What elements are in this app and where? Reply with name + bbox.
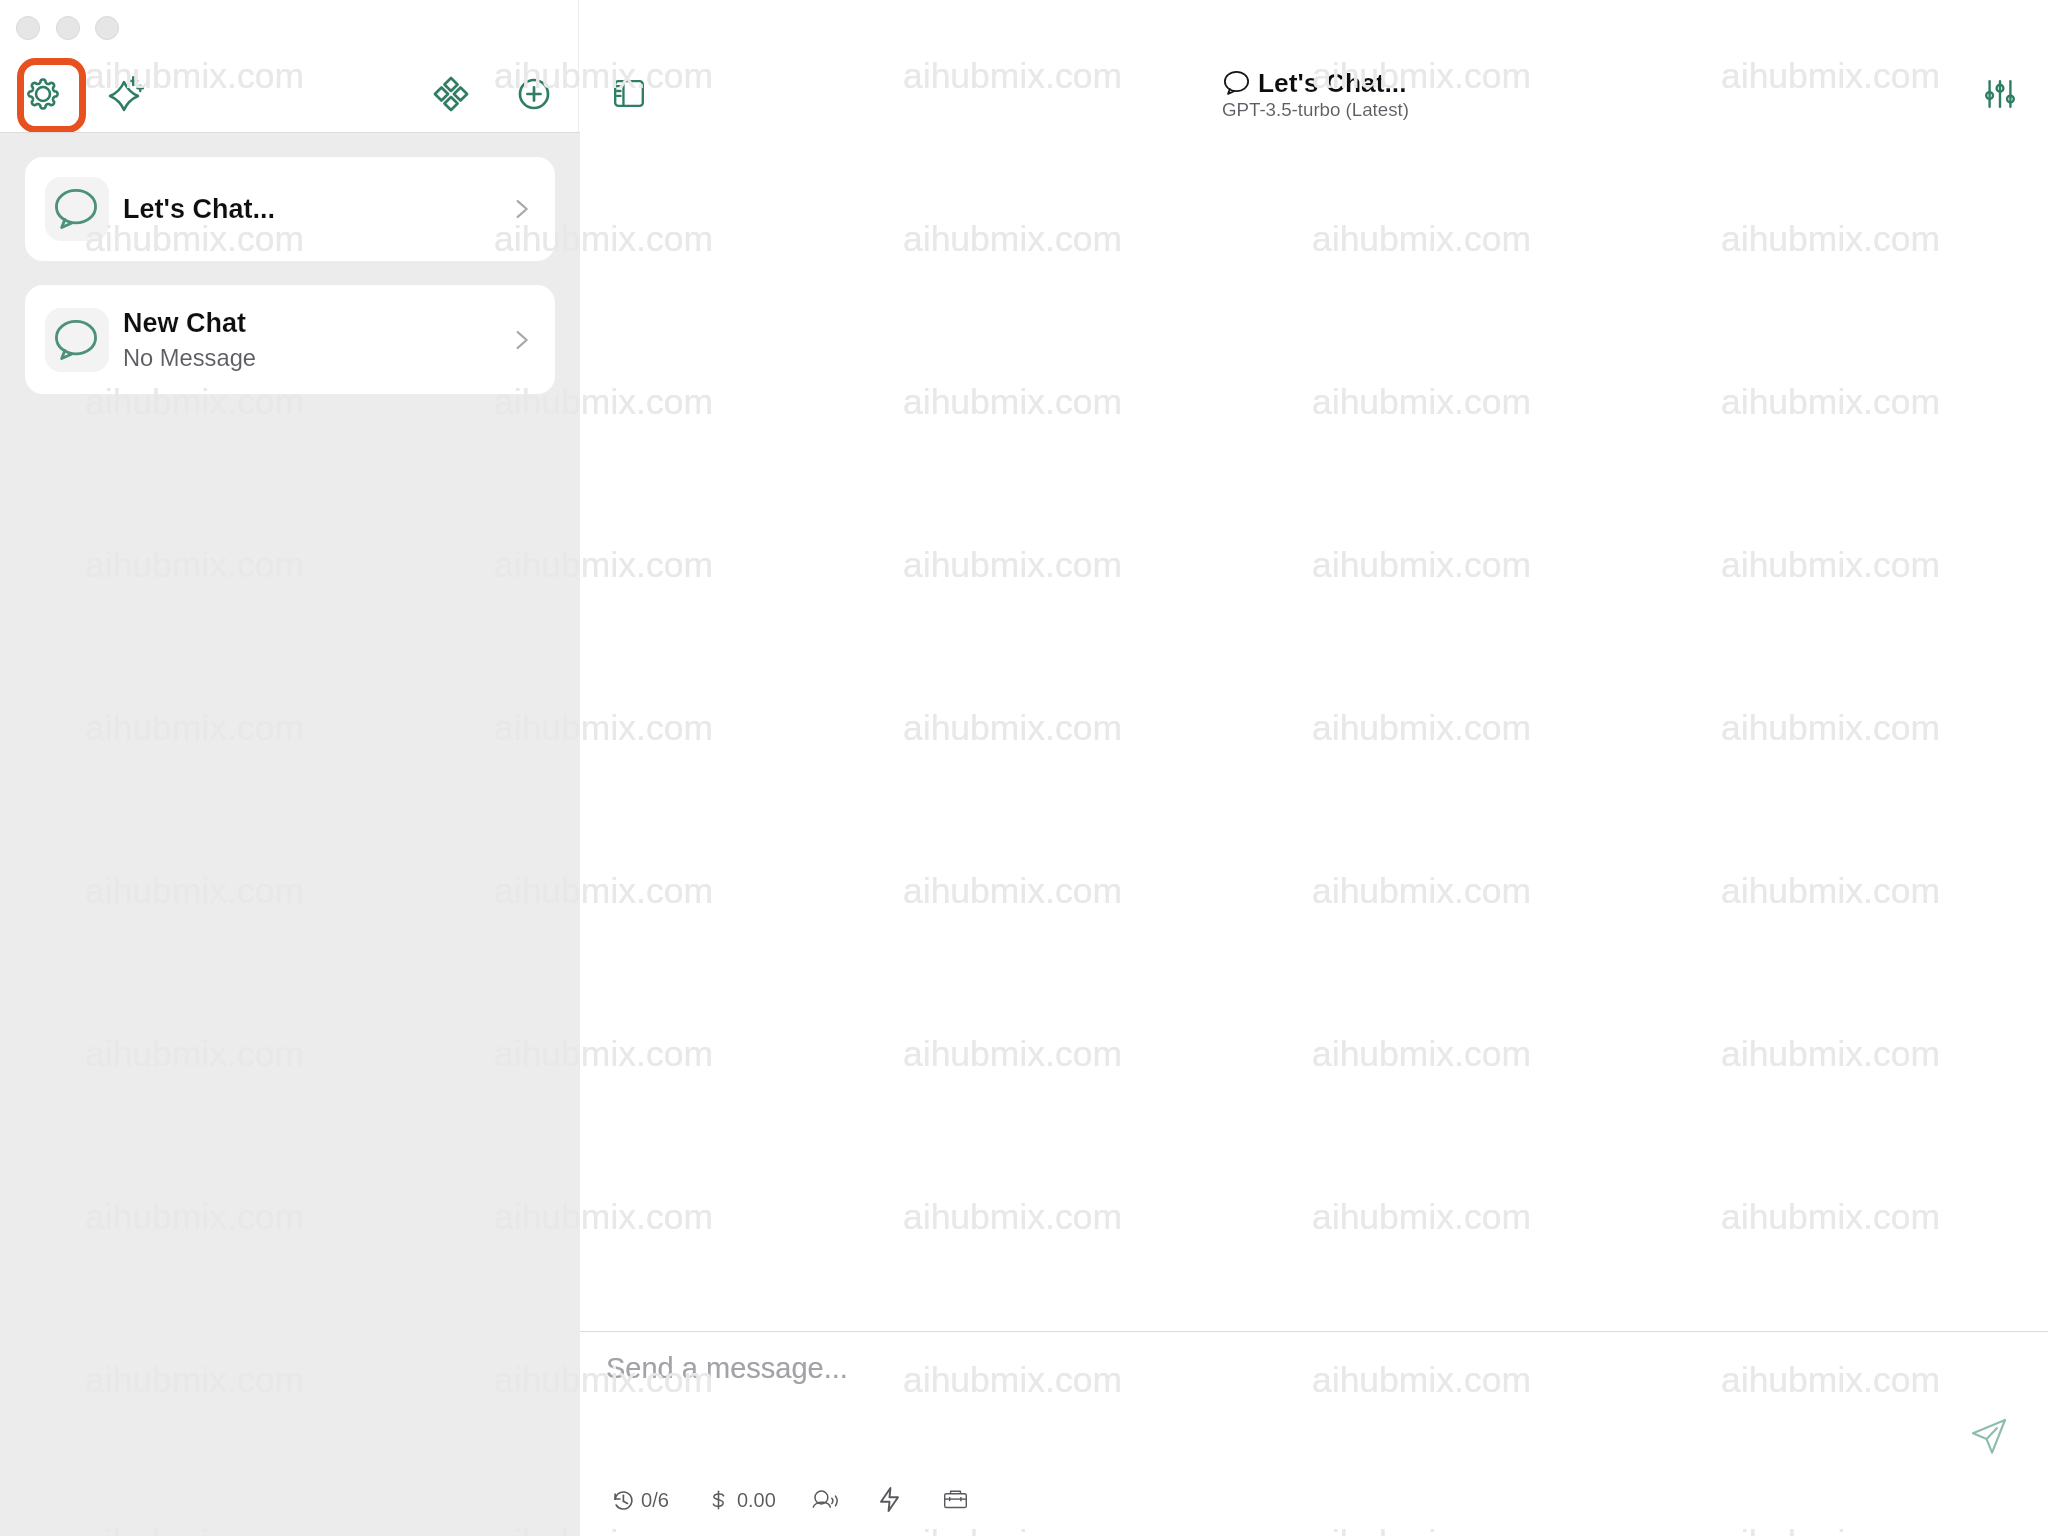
staticText: aihubmix.com (903, 1360, 1122, 1400)
staticText: 0/6 (641, 1489, 669, 1511)
button[interactable]: 0/6 (604, 1480, 677, 1520)
staticText: No Message (123, 345, 256, 371)
staticText: aihubmix.com (1721, 1034, 1940, 1074)
button[interactable]: Apps (425, 68, 477, 120)
staticText: aihubmix.com (903, 545, 1122, 585)
button[interactable]: Let's Chat... (25, 157, 555, 261)
staticText: aihubmix.com (85, 382, 304, 422)
staticText: aihubmix.com (494, 708, 713, 748)
staticText: Let's Chat... (1258, 68, 1407, 97)
staticText: aihubmix.com (494, 1034, 713, 1074)
staticText: aihubmix.com (903, 219, 1122, 259)
staticText: GPT-3.5-turbo (Latest) (1222, 99, 1409, 120)
staticText: aihubmix.com (903, 871, 1122, 911)
staticText: aihubmix.com (1312, 56, 1531, 96)
button[interactable]: Tools (936, 1481, 974, 1517)
staticText: aihubmix.com (494, 1523, 713, 1536)
staticText: New Chat (123, 308, 247, 338)
staticText: aihubmix.com (494, 871, 713, 911)
staticText: aihubmix.com (903, 1197, 1122, 1237)
staticText: aihubmix.com (1312, 1197, 1531, 1237)
staticText: aihubmix.com (1721, 219, 1940, 259)
staticText: aihubmix.com (1721, 871, 1940, 911)
staticText: aihubmix.com (1312, 382, 1531, 422)
staticText: aihubmix.com (903, 382, 1122, 422)
staticText: aihubmix.com (903, 56, 1122, 96)
staticText: aihubmix.com (1312, 871, 1531, 911)
button[interactable]: Voice (805, 1482, 843, 1518)
staticText: aihubmix.com (1721, 56, 1940, 96)
staticText: aihubmix.com (494, 56, 713, 96)
staticText: aihubmix.com (903, 1523, 1122, 1536)
button[interactable]: New chat (508, 68, 560, 120)
staticText: aihubmix.com (1721, 545, 1940, 585)
staticText: aihubmix.com (1721, 1523, 1940, 1536)
button[interactable]: Model settings (1971, 66, 2029, 122)
button[interactable]: AI assistant (100, 66, 156, 122)
staticText: aihubmix.com (494, 382, 713, 422)
button[interactable]: New Chat (25, 285, 555, 394)
staticText: aihubmix.com (494, 219, 713, 259)
button[interactable]: Toggle sidebar (595, 66, 663, 122)
staticText: 0.00 (737, 1489, 776, 1511)
staticText: Let's Chat... (123, 194, 275, 224)
button[interactable]: Settings (17, 58, 86, 133)
button[interactable]: Send (1965, 1412, 2013, 1460)
staticText: aihubmix.com (1312, 1034, 1531, 1074)
staticText: aihubmix.com (1312, 1523, 1531, 1536)
staticText: aihubmix.com (903, 708, 1122, 748)
staticText: aihubmix.com (1721, 1360, 1940, 1400)
staticText: aihubmix.com (494, 1197, 713, 1237)
staticText: aihubmix.com (1312, 545, 1531, 585)
staticText: aihubmix.com (494, 1360, 713, 1400)
staticText: aihubmix.com (1721, 382, 1940, 422)
staticText: aihubmix.com (85, 56, 304, 96)
button[interactable]: 0.00 (703, 1480, 784, 1520)
button[interactable]: Quick actions (871, 1481, 907, 1517)
staticText: aihubmix.com (1312, 219, 1531, 259)
staticText: aihubmix.com (1312, 1360, 1531, 1400)
staticText: aihubmix.com (1312, 708, 1531, 748)
staticText: aihubmix.com (903, 1034, 1122, 1074)
staticText: aihubmix.com (85, 219, 304, 259)
staticText: aihubmix.com (494, 545, 713, 585)
staticText: Send a message... (606, 1352, 848, 1384)
staticText: aihubmix.com (1721, 708, 1940, 748)
staticText: aihubmix.com (1721, 1197, 1940, 1237)
